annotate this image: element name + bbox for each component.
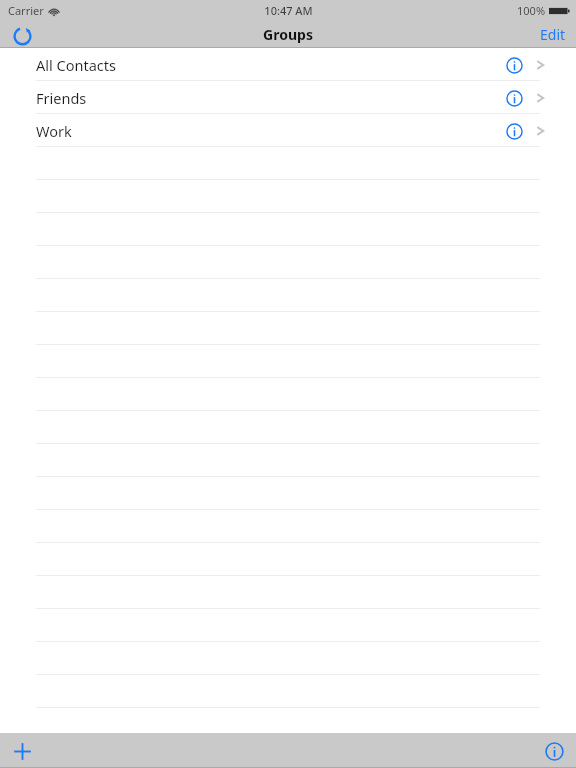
staticText: Edit: [540, 25, 566, 44]
button[interactable]: Information: [532, 734, 576, 768]
staticText: Groups: [263, 25, 313, 44]
staticText: Carrier: [8, 3, 44, 18]
staticText: 100%: [517, 3, 546, 18]
button[interactable]: Edit: [530, 21, 576, 48]
button[interactable]: Friends: [0, 81, 576, 114]
button[interactable]: Refresh: [0, 21, 44, 48]
button[interactable]: Add group: [0, 734, 44, 768]
button[interactable]: Work: [0, 114, 576, 147]
button[interactable]: More info: [499, 50, 529, 80]
staticText: Work: [36, 121, 72, 141]
staticText: Friends: [36, 88, 87, 108]
button[interactable]: More info: [499, 116, 529, 146]
button[interactable]: More info: [499, 83, 529, 113]
staticText: 10:47 AM: [264, 3, 313, 18]
staticText: All Contacts: [36, 55, 116, 75]
button[interactable]: All Contacts: [0, 48, 576, 81]
